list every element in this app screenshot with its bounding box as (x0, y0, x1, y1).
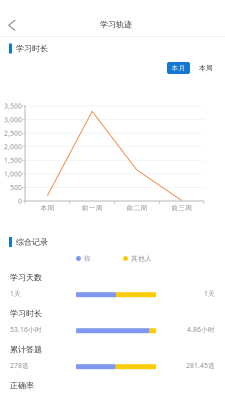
staticText: 1天 (204, 289, 215, 298)
staticText: 综合记录 (16, 237, 48, 247)
staticText: 3,000 (4, 115, 22, 124)
staticText: 本月 (171, 64, 185, 72)
staticText: 500 (10, 183, 22, 192)
staticText: 0 (18, 197, 22, 205)
staticText: 3,500 (4, 102, 22, 110)
button[interactable]: 本月 (167, 62, 190, 74)
staticText: 1,000 (4, 169, 22, 178)
button[interactable]: Back (1, 12, 23, 39)
staticText: 学习轨迹 (100, 20, 132, 29)
staticText: 本周 (199, 64, 213, 72)
staticText: 前三周 (171, 204, 192, 212)
staticText: 其他人 (131, 254, 152, 263)
staticText: 前二周 (126, 204, 147, 212)
staticText: 本周 (40, 204, 54, 212)
staticText: 281.45道 (186, 361, 215, 370)
staticText: 53.16小时 (10, 325, 42, 334)
staticText: 前一周 (82, 204, 103, 212)
staticText: 2,000 (4, 142, 22, 151)
staticText: 学习时长 (16, 44, 48, 53)
staticText: 你 (84, 254, 91, 263)
staticText: 1,500 (4, 156, 22, 165)
button[interactable]: 本周 (196, 62, 216, 74)
staticText: 278道 (10, 361, 29, 370)
staticText: 学习天数 (10, 273, 42, 282)
staticText: 1天 (10, 289, 21, 298)
staticText: 学习时长 (10, 309, 42, 318)
staticText: 累计答题 (10, 345, 42, 354)
staticText: 2,500 (4, 129, 22, 138)
staticText: 4.86小时 (187, 325, 215, 334)
staticText: 正确率 (10, 381, 34, 390)
